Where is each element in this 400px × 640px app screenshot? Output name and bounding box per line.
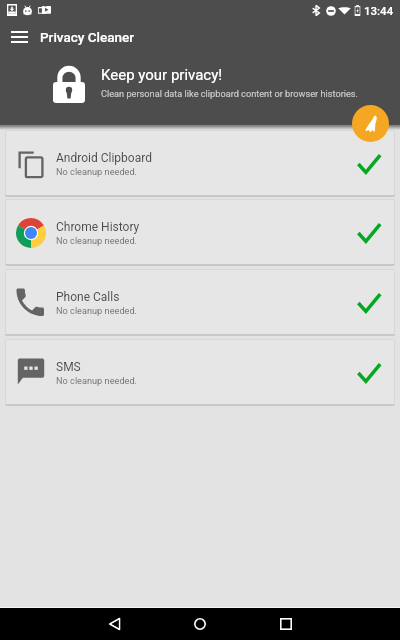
staticText: No cleanup needed. xyxy=(56,305,138,316)
staticText: Keep your privacy! xyxy=(101,66,223,84)
button[interactable]: Phone Calls xyxy=(5,269,395,336)
staticText: Privacy Cleaner xyxy=(40,29,134,45)
button[interactable]: Clean now xyxy=(352,105,389,142)
staticText: Chrome History xyxy=(56,220,140,234)
button[interactable]: Back xyxy=(86,608,143,640)
button[interactable]: Android Clipboard xyxy=(5,130,395,197)
staticText: 13:44 xyxy=(364,4,394,17)
staticText: Clean personal data like clipboard conte… xyxy=(101,88,359,99)
staticText: No cleanup needed. xyxy=(56,166,138,177)
button[interactable]: Open navigation menu xyxy=(0,20,38,53)
button[interactable]: Recent apps xyxy=(257,608,314,640)
staticText: Android Clipboard xyxy=(56,151,152,165)
staticText: SMS xyxy=(56,360,81,374)
button[interactable]: SMS xyxy=(5,339,395,406)
button[interactable]: Chrome History xyxy=(5,199,395,266)
staticText: No cleanup needed. xyxy=(56,375,138,386)
staticText: No cleanup needed. xyxy=(56,235,138,246)
button[interactable]: Home xyxy=(171,608,228,640)
staticText: Phone Calls xyxy=(56,290,120,304)
